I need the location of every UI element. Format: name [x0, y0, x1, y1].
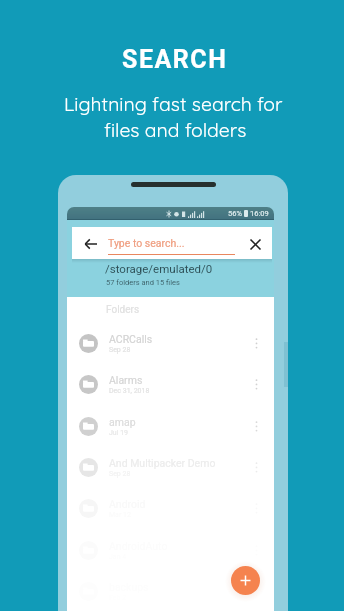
staticText: 16:09 [250, 209, 269, 218]
staticText: 56% [228, 209, 242, 218]
staticText: Dec 31, 2018 [109, 387, 150, 395]
button[interactable]: More options [249, 336, 263, 350]
staticText: amap [109, 416, 136, 428]
button[interactable]: Clear search [245, 234, 265, 254]
button[interactable]: Back [72, 227, 272, 259]
button[interactable]: More options [249, 584, 263, 598]
staticText: And Multipacker Demo [109, 457, 216, 469]
button[interactable]: backups [67, 572, 274, 610]
staticText: Alarms [109, 374, 143, 386]
staticText: ACRCalls [109, 333, 153, 345]
button[interactable]: More options [249, 377, 263, 391]
button[interactable]: AndroidAuto [67, 531, 274, 569]
button[interactable]: And Multipacker Demo [67, 448, 274, 486]
staticText: Type to search... [108, 237, 185, 249]
button[interactable]: Alarms [67, 365, 274, 403]
button[interactable]: Back [84, 237, 98, 251]
button[interactable]: More options [249, 419, 263, 433]
button[interactable]: ACRCalls [67, 324, 274, 362]
staticText: Folders [106, 304, 140, 316]
staticText: SEARCH [122, 45, 228, 74]
staticText: files and folders [104, 118, 247, 142]
staticText: Jul 19 [109, 429, 129, 437]
staticText: Sep 28 [109, 470, 131, 478]
staticText: 57 folders and 15 files [106, 278, 180, 287]
staticText: Lightning fast search for [64, 92, 283, 116]
button[interactable]: Add [231, 566, 260, 595]
staticText: Sep 28 [109, 346, 131, 354]
button[interactable]: amap [67, 407, 274, 445]
staticText: /storage/emulated/0 [105, 262, 213, 275]
